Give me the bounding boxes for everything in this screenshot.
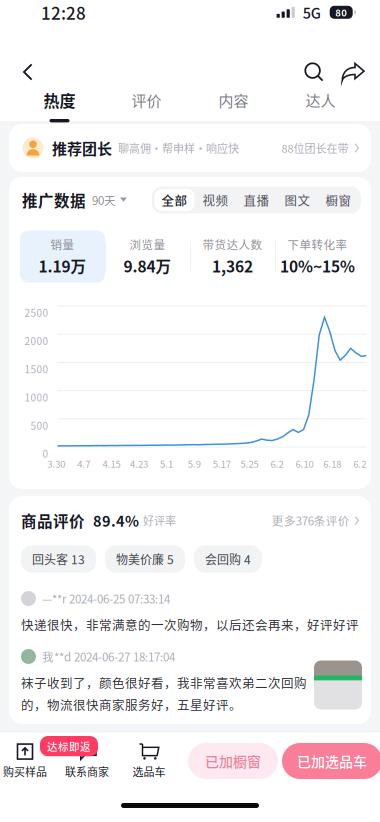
staticText: 浏览量 xyxy=(129,236,165,253)
button[interactable]: 已加选品车 xyxy=(282,743,380,779)
staticText: 2000 xyxy=(24,333,48,348)
button[interactable]: 带货达人数 xyxy=(190,230,275,282)
button[interactable]: 内容 xyxy=(190,83,277,127)
staticText: 5.17 xyxy=(213,457,231,470)
staticText: 88位团长在带 xyxy=(281,140,348,156)
staticText: 更多376条评价 xyxy=(272,512,350,529)
staticText: 袜子收到了，颜色很好看，我非常喜欢弟二次回购 xyxy=(21,673,307,692)
staticText: 好评率 xyxy=(143,512,176,528)
button[interactable]: 更多376条评价 xyxy=(272,510,359,530)
staticText: 物美价廉 5 xyxy=(116,550,174,568)
staticText: 达标即返 xyxy=(47,738,91,754)
staticText: 视频 xyxy=(202,191,228,209)
button[interactable]: 全部 xyxy=(154,189,194,211)
staticText: 5.1 xyxy=(160,457,173,470)
staticText: 3.30 xyxy=(47,457,65,470)
staticText: 已加橱窗 xyxy=(205,751,261,771)
staticText: 回头客 13 xyxy=(32,550,85,568)
staticText: 1,362 xyxy=(212,255,253,277)
button[interactable]: 浏览量 xyxy=(105,230,190,282)
staticText: 6.18 xyxy=(323,457,341,470)
staticText: 会回购 4 xyxy=(205,550,251,568)
staticText: 10%~15% xyxy=(280,255,355,277)
button[interactable]: 直播 xyxy=(236,189,276,211)
staticText: 推广数据 xyxy=(22,189,86,211)
staticText: 我**d 2024-06-27 18:17:04 xyxy=(42,648,175,665)
button[interactable]: 热度 xyxy=(16,83,103,127)
staticText: 2500 xyxy=(24,305,48,320)
staticText: 4.7 xyxy=(77,457,90,470)
button[interactable]: 选品车 xyxy=(118,739,180,783)
button[interactable]: Search xyxy=(294,53,334,91)
staticText: 的，物流很快商家服务好，五星好评。 xyxy=(21,696,242,714)
staticText: 快递很快，非常满意的一次购物，以后还会再来，好评好评 xyxy=(21,615,359,634)
staticText: 带货达人数 xyxy=(202,236,262,253)
staticText: 5G xyxy=(303,2,321,23)
staticText: 下单转化率 xyxy=(287,236,347,253)
staticText: 6.10 xyxy=(296,457,314,470)
staticText: 内容 xyxy=(218,89,248,111)
staticText: 500 xyxy=(30,418,48,433)
button[interactable]: 达人 xyxy=(277,83,364,127)
staticText: 评价 xyxy=(131,89,161,111)
staticText: 橱窗 xyxy=(325,191,351,209)
button[interactable]: 图文 xyxy=(277,189,317,211)
staticText: —**r 2024-06-25 07:33:14 xyxy=(42,590,170,607)
staticText: 6.2 xyxy=(353,457,366,470)
staticText: 达人 xyxy=(305,89,335,111)
staticText: 6.2 xyxy=(270,457,283,470)
button[interactable]: 已加橱窗 xyxy=(188,743,278,779)
staticText: 聊高佣·帮申样·响应快 xyxy=(118,140,239,156)
staticText: 5.25 xyxy=(240,457,258,470)
staticText: 推荐团长 xyxy=(52,137,112,159)
staticText: 12:28 xyxy=(41,0,86,25)
staticText: 9.84万 xyxy=(123,255,171,277)
staticText: 1500 xyxy=(24,362,48,376)
staticText: 1.19万 xyxy=(38,255,86,277)
button[interactable]: 会回购 4 xyxy=(194,545,262,573)
staticText: 购买样品 xyxy=(3,763,47,779)
staticText: 图文 xyxy=(284,191,310,209)
staticText: 直播 xyxy=(243,191,269,209)
staticText: 联系商家 xyxy=(65,763,109,779)
button[interactable]: 物美价廉 5 xyxy=(105,545,185,573)
staticText: 4.23 xyxy=(130,457,148,470)
button[interactable]: 联系商家 xyxy=(56,739,118,783)
staticText: 全部 xyxy=(161,191,187,209)
button[interactable]: 橱窗 xyxy=(318,189,358,211)
button[interactable]: 下单转化率 xyxy=(275,230,360,282)
staticText: 热度 xyxy=(43,88,75,112)
button[interactable]: 推荐团长 xyxy=(9,124,371,172)
staticText: 销量 xyxy=(50,236,74,253)
button[interactable]: 销量 xyxy=(20,230,105,282)
staticText: 90天 xyxy=(92,192,116,208)
staticText: 1000 xyxy=(24,390,48,404)
button[interactable]: 购买样品 xyxy=(0,739,56,783)
button[interactable]: 回头客 13 xyxy=(21,545,96,573)
staticText: 89.4% xyxy=(93,510,139,531)
button[interactable]: Back xyxy=(10,53,46,91)
staticText: 0 xyxy=(42,446,48,461)
button[interactable]: Share xyxy=(334,53,372,91)
staticText: 商品评价 xyxy=(21,509,85,532)
staticText: 80 xyxy=(335,5,347,19)
staticText: 选品车 xyxy=(132,763,165,779)
button[interactable]: 评价 xyxy=(103,83,190,127)
staticText: 5.9 xyxy=(188,457,201,470)
staticText: 4.15 xyxy=(102,457,120,470)
staticText: 已加选品车 xyxy=(297,751,367,771)
button[interactable]: 视频 xyxy=(195,189,235,211)
